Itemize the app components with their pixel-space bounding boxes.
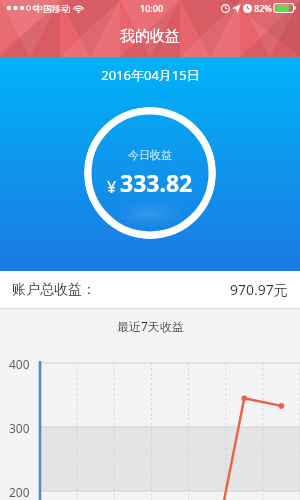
staticText: 970.97元 — [230, 280, 288, 299]
staticText: 账户总收益： — [12, 281, 96, 299]
staticText: 82% — [254, 2, 272, 14]
staticText: 中国移动 — [34, 3, 70, 14]
staticText: 2016年04月15日 — [101, 66, 200, 84]
staticText: 今日收益 — [128, 148, 172, 162]
staticText: 10:00 — [140, 2, 164, 14]
staticText: 最近7天收益 — [117, 318, 184, 334]
staticText: 333.82 — [120, 167, 193, 198]
staticText: ¥ — [107, 176, 117, 198]
staticText: 300 — [9, 420, 30, 436]
button[interactable]: 今日收益 — [84, 107, 216, 239]
staticText: 400 — [9, 356, 30, 372]
staticText: 200 — [9, 484, 30, 500]
button[interactable]: 账户总收益： — [0, 271, 300, 308]
staticText: 我的收益 — [120, 27, 180, 46]
